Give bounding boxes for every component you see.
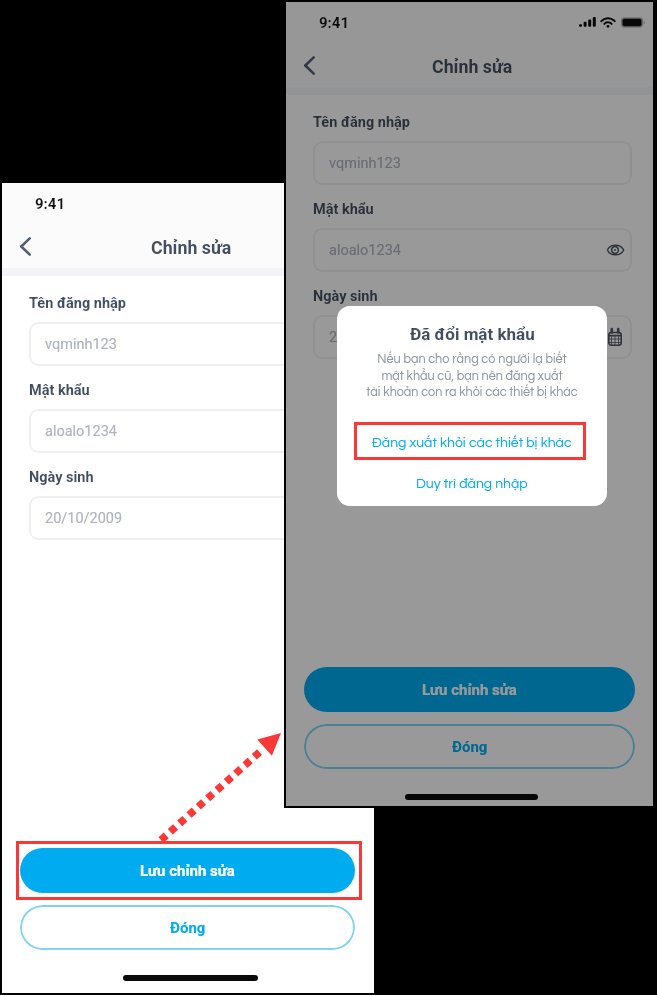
staticText: vqminh123 (45, 336, 117, 353)
button[interactable]: Đăng xuất khỏi các thiết bị khác (354, 422, 590, 464)
staticText: Mật khẩu (313, 201, 374, 218)
staticText: 9:41 (35, 195, 66, 213)
staticText: aloalo1234 (45, 423, 117, 440)
button[interactable]: Pick date (322, 505, 348, 531)
staticText: 9:41 (319, 14, 350, 32)
staticText: Đã đổi mật khẩu (410, 324, 535, 344)
staticText: Lưu chỉnh sửa (140, 862, 235, 880)
staticText: Chỉnh sửa (432, 56, 513, 77)
staticText: Tên đăng nhập (29, 295, 126, 312)
button[interactable]: Lưu chỉnh sửa (20, 848, 355, 893)
staticText: Tên đăng nhập (313, 114, 410, 131)
button[interactable]: aloalo1234 (29, 409, 352, 453)
staticText: Duy trì đăng nhập (416, 477, 528, 491)
staticText: Chỉnh sửa (151, 237, 232, 258)
button[interactable]: vqminh123 (313, 141, 632, 185)
staticText: Đăng xuất khỏi các thiết bị khác (372, 436, 572, 450)
button[interactable]: Show password (602, 237, 628, 263)
staticText: Nếu bạn cho rằng có người lạ biết mật kh… (366, 353, 578, 398)
staticText: Ngày sinh (29, 469, 94, 486)
staticText: 20/10/2009 (45, 510, 123, 527)
button[interactable]: 20/10/2009 (29, 496, 352, 540)
button[interactable]: vqminh123 (29, 322, 352, 366)
button[interactable]: Back (288, 47, 330, 83)
staticText: Lưu chỉnh sửa (422, 681, 517, 699)
button[interactable]: Lưu chỉnh sửa (304, 667, 635, 712)
staticText: Đóng (452, 738, 488, 756)
button[interactable]: Show password (322, 418, 348, 444)
staticText: Mật khẩu (29, 382, 90, 399)
staticText: Đóng (170, 919, 206, 937)
button[interactable]: Back (4, 228, 47, 264)
staticText: Ngày sinh (313, 288, 378, 305)
button[interactable]: Duy trì đăng nhập (354, 464, 590, 504)
button[interactable]: Đóng (20, 905, 355, 950)
button[interactable]: aloalo1234 (313, 228, 632, 272)
button[interactable]: Pick date (602, 324, 628, 350)
staticText: aloalo1234 (329, 242, 401, 259)
button[interactable]: Đóng (304, 724, 635, 769)
staticText: 20/10/2009 (329, 329, 407, 346)
button[interactable]: 20/10/2009 (313, 315, 632, 359)
staticText: vqminh123 (329, 155, 401, 172)
